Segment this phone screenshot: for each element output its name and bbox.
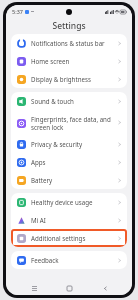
button[interactable]: Sound & touch	[11, 92, 127, 110]
button[interactable]: Feedback	[11, 251, 127, 269]
button[interactable]: Home	[61, 281, 77, 295]
staticText: Settings	[52, 20, 86, 32]
staticText: Additional settings	[31, 234, 86, 242]
button[interactable]: Privacy & security	[11, 135, 127, 153]
staticText: Apps	[31, 158, 46, 166]
button[interactable]: Healthy device usage	[11, 193, 127, 211]
button[interactable]: Mi AI	[11, 211, 127, 229]
staticText: Notifications & status bar	[31, 39, 105, 47]
staticText: Fingerprints, face data, and	[31, 115, 111, 123]
button[interactable]: Battery	[11, 171, 127, 189]
staticText: Privacy & security	[31, 140, 83, 148]
staticText: 5:37	[12, 8, 23, 15]
button[interactable]: Notifications & status bar	[11, 34, 127, 52]
button[interactable]: Apps	[11, 153, 127, 171]
staticText: Home screen	[31, 57, 70, 65]
button[interactable]: Fingerprints, face data, and	[11, 110, 127, 135]
button[interactable]: Additional settings	[11, 229, 127, 247]
button[interactable]: Recent apps	[26, 281, 42, 295]
staticText: screen lock	[31, 123, 64, 131]
button[interactable]: Display & brightness	[11, 70, 127, 88]
staticText: Feedback	[31, 256, 59, 264]
button[interactable]: Back	[97, 281, 113, 295]
staticText: Battery	[31, 176, 53, 184]
staticText: Sound & touch	[31, 97, 74, 105]
staticText: Healthy device usage	[31, 198, 93, 206]
staticText: Mi AI	[31, 216, 46, 224]
button[interactable]: Home screen	[11, 52, 127, 70]
staticText: Display & brightness	[31, 75, 91, 83]
